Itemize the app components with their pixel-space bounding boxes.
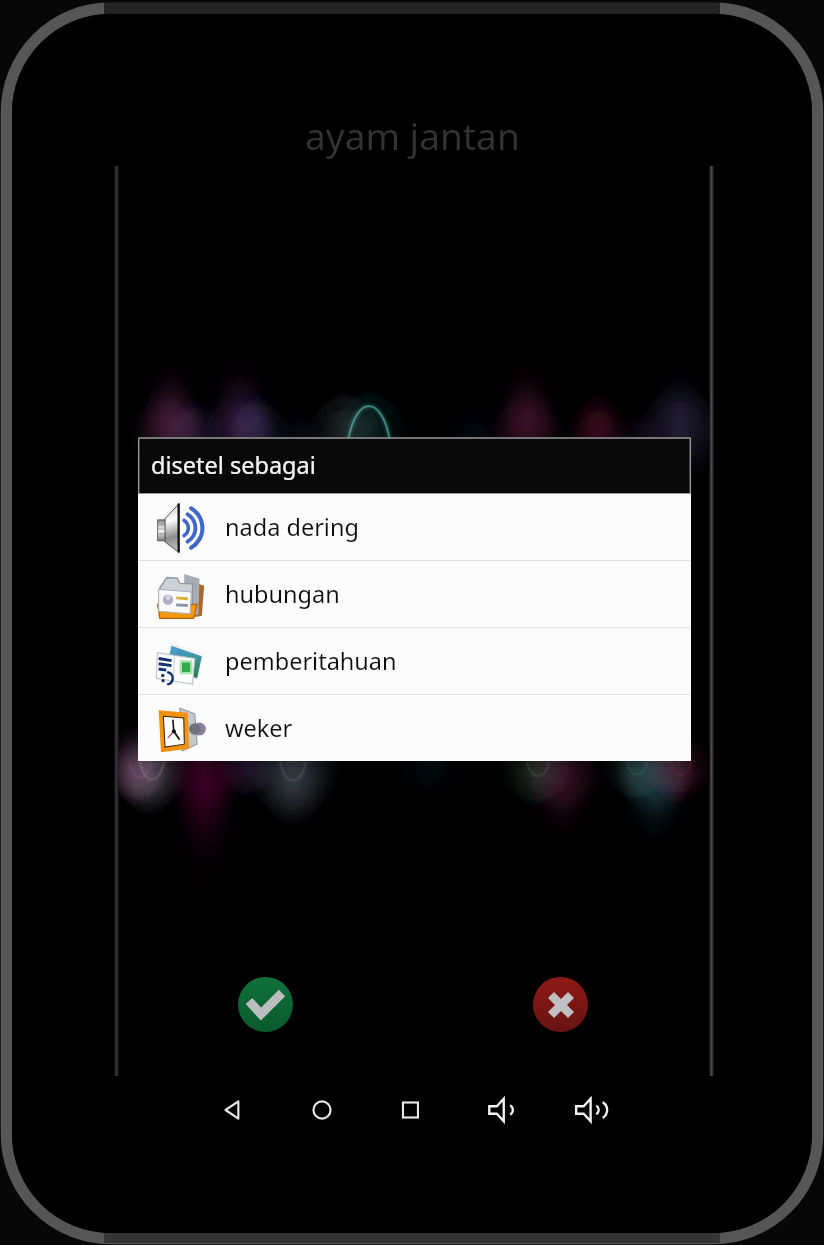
staticText: hubungan: [225, 578, 340, 610]
button[interactable]: Recents: [385, 1084, 437, 1136]
button[interactable]: Accept: [238, 977, 293, 1032]
staticText: pemberitahuan: [225, 645, 397, 677]
button[interactable]: pemberitahuan: [138, 628, 691, 694]
button[interactable]: weker: [138, 695, 691, 761]
button[interactable]: nada dering: [138, 494, 691, 560]
button[interactable]: Reject: [533, 977, 588, 1032]
staticText: disetel sebagai: [151, 449, 316, 481]
button[interactable]: Volume down: [474, 1084, 526, 1136]
button[interactable]: Back: [207, 1084, 259, 1136]
button[interactable]: hubungan: [138, 561, 691, 627]
button[interactable]: Volume up: [563, 1084, 615, 1136]
staticText: nada dering: [225, 511, 359, 543]
staticText: weker: [225, 712, 293, 744]
staticText: ayam jantan: [305, 110, 520, 160]
button[interactable]: Home: [296, 1084, 348, 1136]
